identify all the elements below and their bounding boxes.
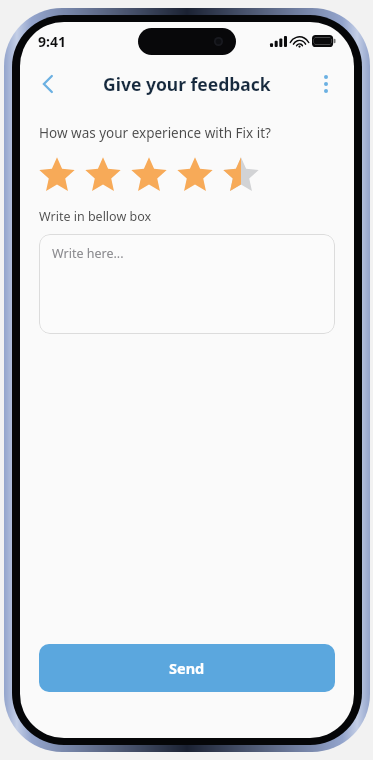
- button[interactable]: Rate 5 stars: [222, 156, 260, 194]
- button[interactable]: Send: [39, 644, 335, 692]
- button[interactable]: Rate 3 stars: [130, 156, 168, 194]
- button[interactable]: Rate 2 stars: [84, 156, 122, 194]
- button[interactable]: Rate 1 stars: [38, 156, 76, 194]
- staticText: 9:41: [38, 32, 66, 51]
- staticText: Send: [169, 658, 205, 678]
- staticText: Give your feedback: [103, 72, 271, 96]
- button[interactable]: Rate 4 stars: [176, 156, 214, 194]
- button[interactable]: Write here...: [39, 234, 335, 334]
- staticText: Write here...: [52, 245, 124, 262]
- staticText: Write in bellow box: [39, 208, 152, 225]
- staticText: How was your experience with Fix it?: [39, 124, 271, 142]
- button[interactable]: Back: [30, 66, 66, 102]
- button[interactable]: More options: [308, 66, 344, 102]
